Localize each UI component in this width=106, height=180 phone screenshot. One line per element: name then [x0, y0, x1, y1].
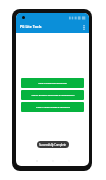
- staticText: APPLY BACKUP SETTINGS & SENSITIVITY: [31, 94, 75, 97]
- button[interactable]: Back: [33, 157, 40, 164]
- staticText: PG Lite Tools: [20, 24, 42, 29]
- staticText: Successfully Complete: [39, 143, 67, 147]
- button[interactable]: APPLY RANDOM SETTINGS: [21, 78, 84, 88]
- button[interactable]: More options: [81, 22, 87, 33]
- staticText: APPLY RANDOM SETTINGS: [38, 82, 67, 85]
- button[interactable]: APPLY BACKUP SETTINGS & SENSITIVITY: [21, 90, 84, 100]
- staticText: APPLY FIXED MOBILE SETTINGS: [36, 106, 70, 109]
- button[interactable]: APPLY FIXED MOBILE SETTINGS: [21, 102, 84, 112]
